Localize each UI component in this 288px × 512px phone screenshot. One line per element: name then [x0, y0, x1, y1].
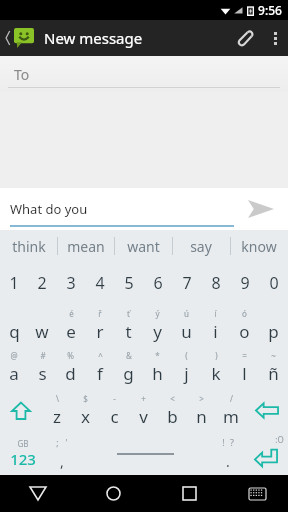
staticText: b [167, 405, 178, 428]
staticText: q [9, 320, 20, 343]
staticText: ; [56, 436, 59, 448]
button[interactable]: 5 [114, 262, 143, 304]
button[interactable]: w [28, 304, 56, 346]
button[interactable]: Recent apps [151, 475, 227, 512]
button[interactable]: ó [230, 304, 259, 346]
button[interactable]: say [172, 230, 230, 262]
button[interactable]: \ [42, 389, 71, 432]
button[interactable]: = [230, 346, 259, 389]
button[interactable]: Space [77, 432, 213, 475]
button[interactable]: % [56, 346, 85, 389]
button[interactable]: # [28, 346, 56, 389]
button[interactable]: GB [0, 432, 46, 475]
staticText: GB [17, 438, 29, 449]
staticText: 9 [240, 272, 250, 294]
staticText: What do you [10, 200, 234, 218]
button[interactable]: ť [114, 304, 143, 346]
button[interactable]: 1 [0, 262, 28, 304]
staticText: ) [215, 350, 218, 361]
staticText: l [242, 362, 247, 385]
staticText: ( [185, 350, 188, 361]
staticText: 5 [124, 272, 134, 294]
button[interactable]: think [0, 230, 57, 262]
staticText: @ [10, 350, 18, 361]
staticText: k [211, 362, 221, 385]
staticText: ú [184, 308, 189, 319]
staticText: 123 [10, 449, 36, 469]
button[interactable]: Back [0, 475, 75, 512]
button[interactable]: 6 [143, 262, 172, 304]
button[interactable]: 7 [172, 262, 201, 304]
button[interactable]: $ [71, 389, 100, 432]
button[interactable]: Send [234, 188, 288, 230]
staticText: 1 [9, 272, 19, 294]
button[interactable]: í [201, 304, 230, 346]
staticText: p [268, 320, 279, 343]
button[interactable]: know [230, 230, 288, 262]
staticText: - [113, 393, 116, 404]
staticText: t [125, 320, 132, 343]
button[interactable]: To [0, 56, 288, 92]
button[interactable]: 3 [56, 262, 85, 304]
staticText: ř [98, 308, 102, 319]
staticText: w [35, 320, 49, 343]
staticText: 4 [95, 272, 105, 294]
button[interactable]: 0 [259, 262, 288, 304]
staticText: o [239, 320, 250, 343]
button[interactable]: Shift [0, 389, 42, 432]
button[interactable]: Enter [243, 432, 288, 475]
button[interactable]: ( [172, 346, 201, 389]
button[interactable]: q [0, 304, 28, 346]
button[interactable]: Attach [226, 20, 262, 56]
staticText: f [97, 362, 103, 385]
staticText: ó [242, 308, 247, 319]
button[interactable]: Delete [245, 389, 288, 432]
button[interactable]: 9 [230, 262, 259, 304]
button[interactable]: ) [201, 346, 230, 389]
staticText: & [126, 350, 132, 361]
staticText: 3 [66, 272, 76, 294]
staticText: u [181, 320, 192, 343]
button[interactable]: ! [213, 432, 243, 475]
button[interactable]: More options [262, 20, 288, 56]
button[interactable]: What do you [10, 188, 234, 230]
button[interactable]: + [129, 389, 158, 432]
button[interactable]: ř [85, 304, 114, 346]
button[interactable]: p [259, 304, 288, 346]
staticText: = [242, 350, 247, 361]
button[interactable]: 4 [85, 262, 114, 304]
button[interactable]: Home [75, 475, 151, 512]
button[interactable]: é [56, 304, 85, 346]
button[interactable]: * [143, 346, 172, 389]
button[interactable]: 2 [28, 262, 56, 304]
staticText: m [223, 405, 239, 428]
staticText: * [155, 350, 160, 361]
staticText: , [60, 452, 64, 471]
staticText: 2 [37, 272, 47, 294]
button[interactable]: want [114, 230, 172, 262]
button[interactable]: / [216, 389, 245, 432]
button[interactable]: Switch keyboard [227, 475, 288, 512]
button[interactable]: > [187, 389, 216, 432]
button[interactable]: - [100, 389, 129, 432]
button[interactable]: 8 [201, 262, 230, 304]
button[interactable]: ^ [85, 346, 114, 389]
staticText: < [170, 393, 175, 404]
button[interactable]: ; [46, 432, 77, 475]
button[interactable]: ~ [259, 346, 288, 389]
staticText: \ [56, 393, 59, 404]
button[interactable]: ú [172, 304, 201, 346]
button[interactable]: < [158, 389, 187, 432]
staticText: know [241, 237, 277, 256]
staticText: ñ [268, 362, 279, 385]
staticText: e [66, 320, 76, 343]
button[interactable]: @ [0, 346, 28, 389]
button[interactable]: mean [57, 230, 114, 262]
staticText: i [213, 320, 218, 343]
staticText: 8 [211, 272, 221, 294]
staticText: # [40, 350, 46, 361]
button[interactable]: Navigate up [2, 28, 37, 48]
button[interactable]: ý [143, 304, 172, 346]
button[interactable]: & [114, 346, 143, 389]
staticText: j [184, 362, 189, 385]
